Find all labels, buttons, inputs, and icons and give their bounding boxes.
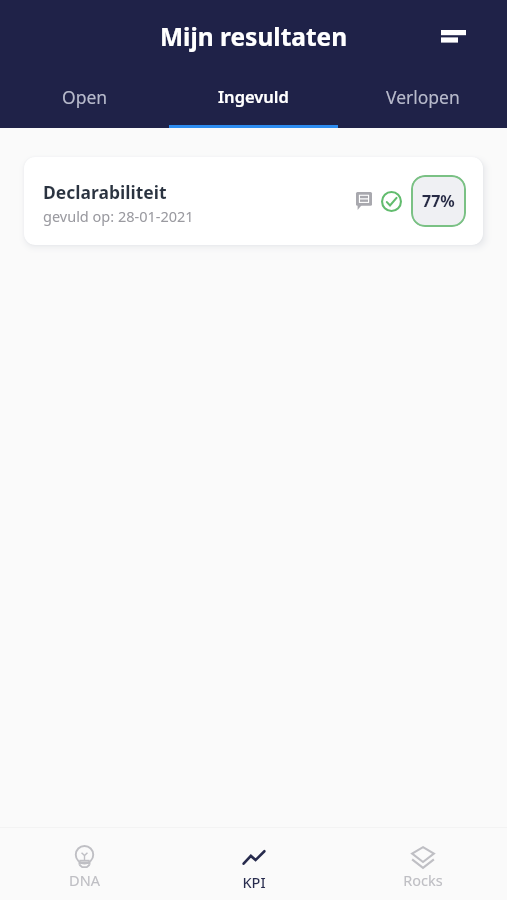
button[interactable]: Ingevuld <box>169 72 338 128</box>
staticText: Declarabiliteit <box>43 180 167 204</box>
button[interactable]: Menu <box>431 14 475 58</box>
button[interactable]: Comments <box>356 192 372 210</box>
staticText: KPI <box>242 872 266 892</box>
staticText: DNA <box>69 870 100 890</box>
button[interactable]: Open <box>0 72 169 128</box>
staticText: Rocks <box>403 870 443 890</box>
staticText: Verlopen <box>386 85 460 109</box>
button[interactable]: DNA <box>0 828 169 900</box>
staticText: Open <box>62 85 108 109</box>
staticText: gevuld op: 28-01-2021 <box>43 206 194 226</box>
button[interactable]: KPI <box>169 828 338 900</box>
staticText: Ingevuld <box>218 85 289 107</box>
button[interactable]: Verlopen <box>338 72 507 128</box>
staticText: 77% <box>422 190 455 212</box>
button[interactable]: Declarabiliteit <box>24 157 483 245</box>
button[interactable]: Rocks <box>338 828 507 900</box>
staticText: Mijn resultaten <box>160 20 348 53</box>
